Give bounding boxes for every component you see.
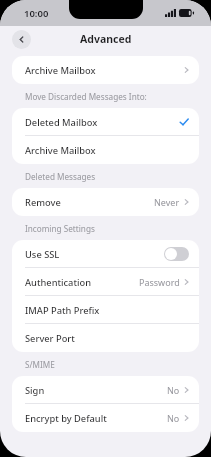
button[interactable]: Use SSL toggle — [164, 247, 189, 261]
staticText: 10:00 — [24, 7, 49, 20]
staticText: IMAP Path Prefix — [25, 304, 100, 317]
button[interactable]: Sign — [12, 376, 199, 404]
button[interactable]: Authentication — [12, 268, 199, 296]
staticText: No — [167, 412, 180, 424]
button[interactable]: Remove — [12, 188, 199, 216]
staticText: S/MIME — [25, 359, 55, 370]
staticText: Server Port — [25, 332, 75, 345]
staticText: Deleted Mailbox — [25, 116, 98, 129]
staticText: Archive Mailbox — [25, 144, 96, 157]
button[interactable]: Use SSL — [12, 240, 199, 268]
button[interactable]: Archive Mailbox — [12, 136, 199, 164]
staticText: Incoming Settings — [25, 223, 95, 234]
staticText: No — [167, 384, 180, 396]
staticText: Archive Mailbox — [25, 64, 96, 77]
staticText: Advanced — [80, 32, 132, 46]
staticText: Sign — [25, 384, 45, 397]
staticText: Remove — [25, 196, 61, 209]
staticText: Password — [139, 276, 180, 288]
button[interactable]: Deleted Mailbox — [12, 108, 199, 136]
staticText: Use SSL — [25, 248, 60, 261]
button[interactable]: Encrypt by Default — [12, 404, 199, 432]
button[interactable]: Archive Mailbox — [12, 56, 199, 84]
staticText: Move Discarded Messages Into: — [25, 91, 147, 102]
button[interactable]: Server Port — [12, 324, 199, 352]
staticText: Encrypt by Default — [25, 412, 107, 425]
staticText: Deleted Messages — [25, 171, 96, 182]
staticText: Never — [154, 196, 180, 208]
button[interactable]: IMAP Path Prefix — [12, 296, 199, 324]
button[interactable]: Back — [12, 30, 31, 49]
staticText: Authentication — [25, 276, 92, 289]
